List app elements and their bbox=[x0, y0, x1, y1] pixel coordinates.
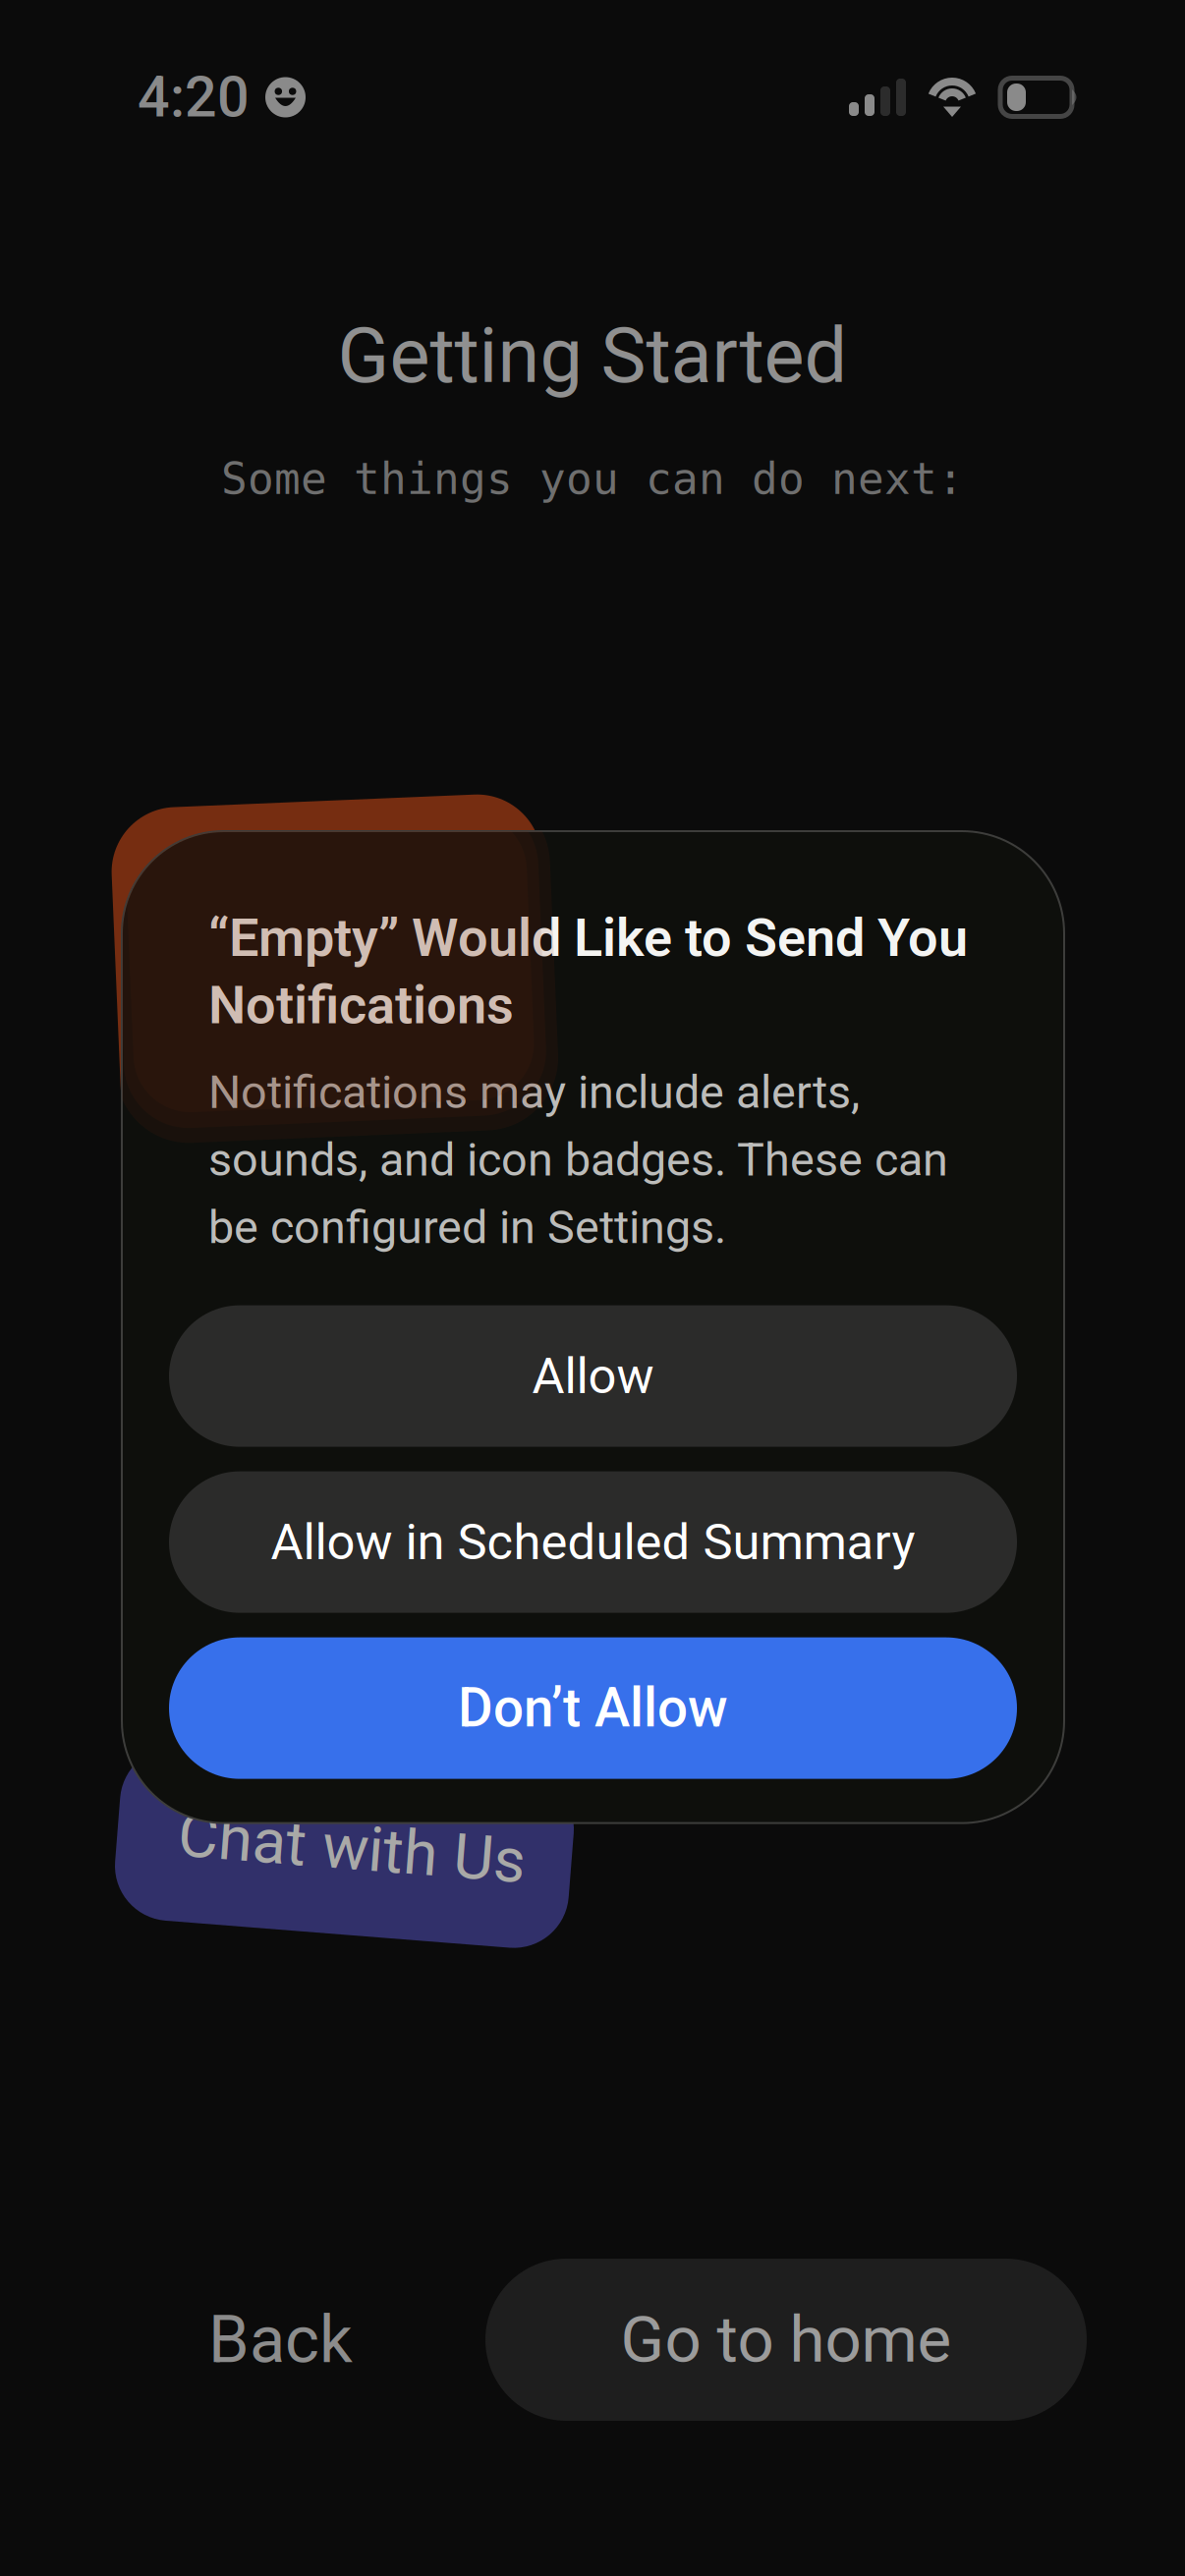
button[interactable]: Allow bbox=[169, 1305, 1017, 1447]
staticText: 4:20 bbox=[138, 64, 250, 130]
staticText: Back bbox=[208, 2301, 353, 2378]
button[interactable]: Chat with Us bbox=[117, 1761, 572, 1934]
staticText: Getting Started bbox=[338, 311, 847, 400]
staticText: Don’t Allow bbox=[458, 1677, 728, 1740]
staticText: Go to home bbox=[621, 2302, 952, 2377]
button[interactable]: Back bbox=[187, 2260, 374, 2419]
staticText: “Empty” Would Like to Send You Notificat… bbox=[208, 907, 968, 1036]
staticText: Allow in Scheduled Summary bbox=[271, 1513, 915, 1571]
button[interactable]: Allow in Scheduled Summary bbox=[169, 1471, 1017, 1613]
staticText: Some things you can do next: bbox=[221, 454, 964, 504]
staticText: Chat with Us bbox=[178, 1811, 526, 1884]
staticText: Notifications may include alerts, sounds… bbox=[208, 1066, 948, 1254]
button[interactable]: Don’t Allow bbox=[169, 1637, 1017, 1779]
staticText: Allow bbox=[532, 1347, 654, 1405]
button[interactable]: Go to home bbox=[485, 2259, 1087, 2421]
